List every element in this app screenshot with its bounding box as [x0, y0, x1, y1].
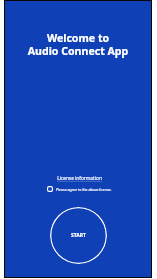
button[interactable]: Please agree to the above license.	[47, 186, 112, 192]
button[interactable]: License information	[57, 175, 102, 182]
staticText: License information	[57, 175, 102, 182]
staticText: Please agree to the above license.	[56, 187, 112, 192]
button[interactable]: START	[50, 207, 107, 264]
staticText: START	[71, 232, 86, 239]
staticText: Welcome to Audio Connect App	[5, 31, 151, 58]
